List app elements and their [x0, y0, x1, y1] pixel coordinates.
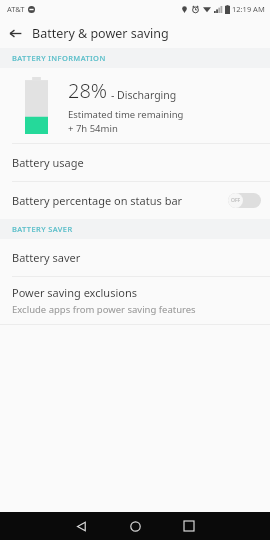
staticText: Exclude apps from power saving features [12, 303, 196, 316]
staticText: 12:19 AM [232, 4, 265, 14]
button[interactable]: Back [54, 512, 108, 540]
staticText: BATTERY INFORMATION [12, 53, 106, 63]
button[interactable]: Recents [162, 512, 216, 540]
button[interactable]: Battery saver [0, 239, 270, 276]
button[interactable]: Battery usage [0, 144, 270, 181]
staticText: - Discharging [111, 88, 177, 102]
button[interactable]: Home [108, 512, 162, 540]
staticText: Battery percentage on status bar [12, 193, 183, 208]
staticText: Estimated time remaining [68, 108, 184, 121]
staticText: Battery saver [12, 250, 81, 265]
button[interactable]: Back [0, 18, 30, 48]
staticText: Battery usage [12, 155, 84, 170]
staticText: AT&T [7, 4, 25, 14]
button[interactable]: Battery percentage on status bar [0, 182, 270, 219]
button[interactable]: Power saving exclusions [0, 277, 270, 324]
staticText: BATTERY SAVER [12, 224, 73, 234]
staticText: OFF [231, 197, 241, 204]
staticText: 28% [68, 77, 108, 104]
staticText: Battery & power saving [32, 25, 169, 42]
staticText: + 7h 54min [68, 122, 118, 135]
staticText: Power saving exclusions [12, 285, 137, 300]
